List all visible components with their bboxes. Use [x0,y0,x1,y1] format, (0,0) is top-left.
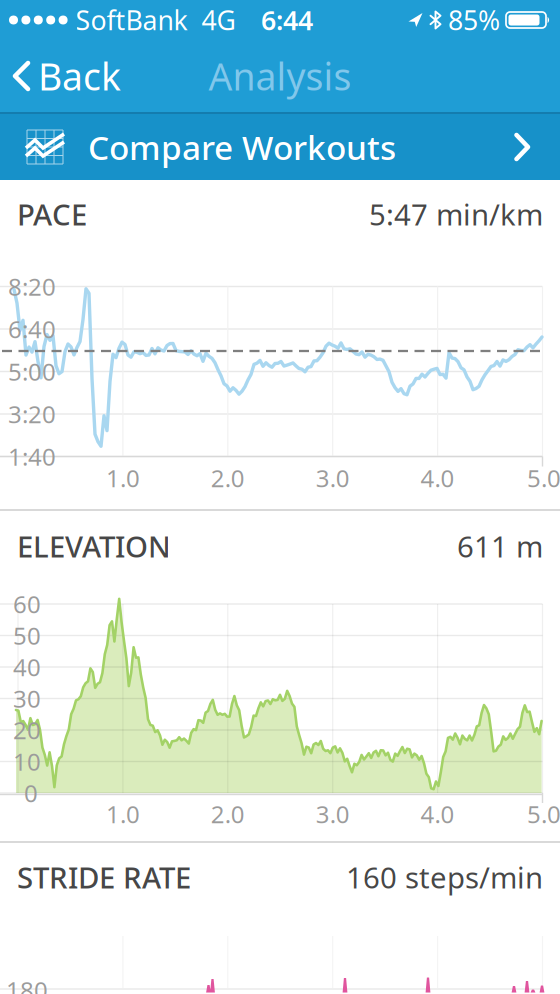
staticText: 1.0 [106,462,140,494]
staticText: 0 [24,777,38,809]
staticText: 3:20 [8,398,56,430]
staticText: 8:20 [8,271,56,302]
button[interactable]: Compare Workouts [0,114,560,180]
staticText: 4.0 [421,798,455,830]
staticText: 85% [448,2,500,38]
staticText: 160 steps/min [346,857,543,896]
staticText: 20 [13,714,41,746]
staticText: Compare Workouts [88,125,396,169]
staticText: 60 [13,588,41,620]
staticText: 1.0 [106,798,140,830]
staticText: 6:40 [8,313,56,345]
staticText: 611 m [457,526,543,565]
staticText: 6:44 [261,2,313,38]
staticText: 180 [6,974,48,994]
staticText: 10 [13,746,41,777]
staticText: 50 [13,620,41,651]
staticText: 3.0 [316,462,350,494]
staticText: 40 [13,651,41,683]
staticText: 1:40 [8,441,56,472]
staticText: 5:00 [8,356,56,387]
staticText: 4.0 [421,462,455,494]
staticText: ELEVATION [17,526,171,565]
staticText: 5.0 [527,798,560,830]
button[interactable]: Back [0,51,121,101]
staticText: 5:47 min/km [369,194,543,233]
staticText: STRIDE RATE [17,857,191,896]
staticText: 2.0 [211,798,245,830]
staticText: SoftBank [76,2,188,38]
staticText: 4G [202,2,236,38]
staticText: Analysis [208,51,351,101]
staticText: PACE [17,194,87,233]
staticText: Back [38,51,121,101]
staticText: 5.0 [527,462,560,494]
staticText: 3.0 [316,798,350,830]
staticText: 2.0 [211,462,245,494]
staticText: 30 [13,683,41,714]
